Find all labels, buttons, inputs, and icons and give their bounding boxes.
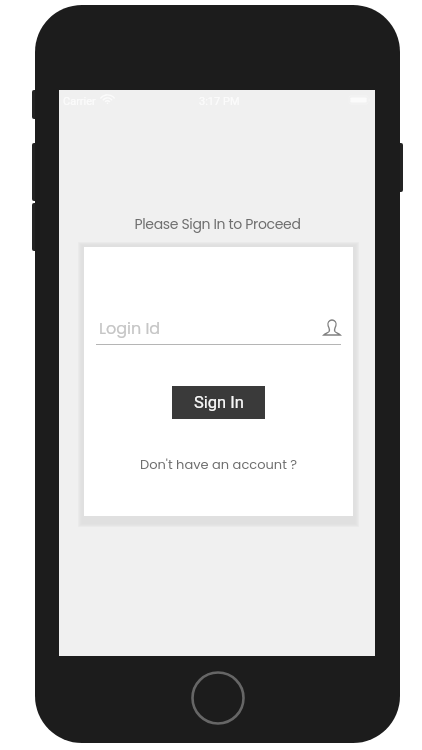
- staticText: Carrier: [63, 95, 96, 108]
- other: Home: [191, 671, 245, 725]
- button[interactable]: Login Id: [96, 316, 341, 344]
- staticText: Login Id: [99, 317, 161, 339]
- other: Account: [323, 319, 341, 336]
- button[interactable]: Sign In: [172, 386, 265, 419]
- staticText: 3:17 PM: [199, 95, 240, 108]
- staticText: Please Sign In to Proceed: [134, 214, 301, 234]
- button[interactable]: Don't have an account ?: [140, 455, 298, 473]
- staticText: Don't have an account ?: [140, 455, 298, 473]
- staticText: Sign In: [194, 393, 244, 412]
